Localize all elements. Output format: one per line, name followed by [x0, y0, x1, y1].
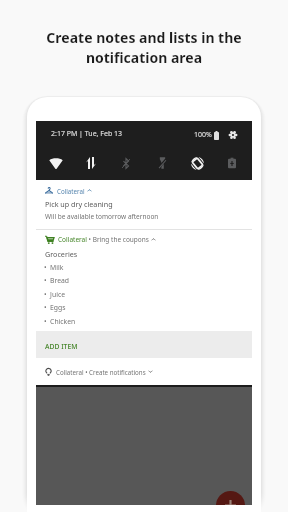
staticText: • Eggs: [44, 303, 66, 312]
staticText: ADD ITEM: [45, 342, 78, 351]
staticText: Create notes and lists in the notificati…: [36, 28, 252, 68]
button[interactable]: Auto-rotate: [186, 152, 208, 174]
button[interactable]: Collateral • Create notifications: [36, 358, 252, 385]
button[interactable]: Create note: [216, 491, 245, 505]
staticText: Groceries: [45, 249, 78, 259]
button[interactable]: Wi-Fi: [45, 152, 67, 174]
staticText: • Chicken: [44, 317, 76, 326]
staticText: Will be available tomorrow afternoon: [45, 212, 159, 221]
button[interactable]: Bluetooth off: [115, 152, 137, 174]
button[interactable]: ADD ITEM: [36, 331, 252, 358]
staticText: • Juice: [44, 290, 65, 299]
button[interactable]: Flashlight off: [151, 152, 173, 174]
staticText: • Bread: [44, 276, 70, 285]
button[interactable]: Settings: [227, 130, 238, 140]
staticText: • Milk: [44, 263, 64, 272]
staticText: 2:17 PM | Tue, Feb 13: [51, 129, 123, 139]
staticText: 100%: [194, 130, 212, 140]
staticText: Collateral • Create notifications: [56, 368, 146, 376]
staticText: Collateral • Bring the coupons: [58, 235, 149, 244]
staticText: Pick up dry cleaning: [45, 199, 113, 209]
button[interactable]: Collateral • Bring the coupons: [36, 230, 252, 331]
button[interactable]: Battery saver: [221, 152, 243, 174]
button[interactable]: Collateral: [36, 180, 252, 229]
staticText: Collateral: [57, 187, 85, 195]
button[interactable]: Mobile data: [80, 152, 102, 174]
